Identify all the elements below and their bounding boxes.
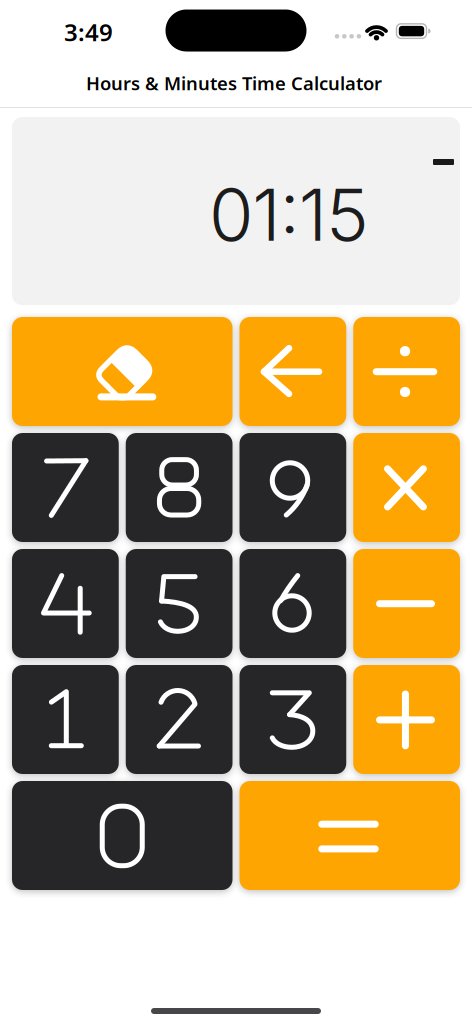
button[interactable] (12, 549, 119, 658)
staticText: 01:15 (209, 171, 369, 258)
button[interactable] (353, 549, 460, 658)
button[interactable] (353, 433, 460, 542)
button[interactable] (239, 317, 346, 426)
button[interactable] (126, 433, 233, 542)
staticText: Hours & Minutes Time Calculator (86, 70, 382, 96)
button[interactable] (12, 781, 232, 890)
button[interactable] (239, 665, 346, 774)
staticText: 3:49 (64, 16, 113, 48)
button[interactable] (239, 433, 346, 542)
button[interactable] (353, 317, 460, 426)
button[interactable] (126, 665, 233, 774)
button[interactable] (126, 549, 233, 658)
button[interactable] (12, 433, 119, 542)
button[interactable] (12, 665, 119, 774)
button[interactable] (239, 781, 460, 890)
button[interactable] (12, 317, 232, 426)
button[interactable] (353, 665, 460, 774)
button[interactable] (239, 549, 346, 658)
